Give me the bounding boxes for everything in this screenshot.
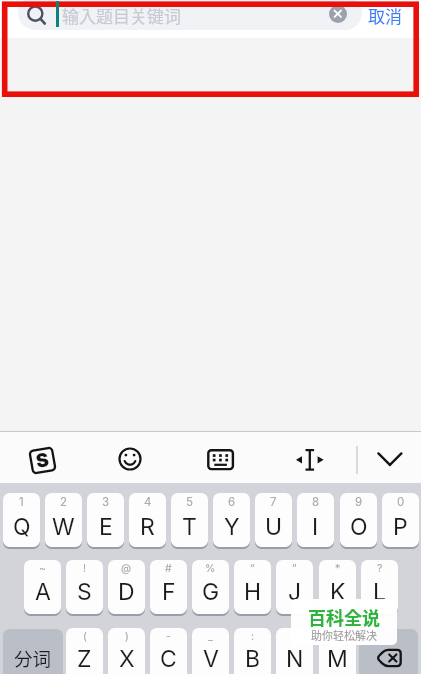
button[interactable]: @	[108, 560, 145, 614]
staticText: 分词	[14, 645, 52, 672]
button[interactable]: (	[66, 628, 103, 674]
button[interactable]: 5	[171, 493, 208, 547]
staticText: I	[312, 513, 319, 541]
button[interactable]: 2	[45, 493, 82, 547]
button[interactable]: -	[150, 628, 187, 674]
button[interactable]: “	[234, 560, 271, 614]
staticText: )	[125, 630, 129, 643]
staticText: #	[165, 562, 172, 575]
staticText: X	[119, 645, 135, 673]
button[interactable]: 8	[297, 493, 334, 547]
button[interactable]: 0	[382, 493, 419, 547]
staticText: E	[99, 513, 113, 541]
staticText: K	[330, 578, 346, 606]
button[interactable]	[117, 446, 143, 472]
button[interactable]: 7	[255, 493, 292, 547]
button[interactable]: :	[234, 628, 271, 674]
staticText: 7	[270, 495, 277, 509]
staticText: 9	[355, 495, 363, 509]
button[interactable]: 9	[340, 493, 377, 547]
staticText: 4	[144, 495, 152, 509]
button[interactable]	[207, 449, 235, 471]
staticText: G	[202, 578, 220, 606]
staticText: (	[83, 630, 87, 643]
staticText: P	[393, 513, 408, 541]
button[interactable]: 取消	[364, 0, 410, 30]
staticText: Q	[13, 513, 31, 541]
staticText: 。	[332, 630, 343, 643]
staticText: V	[203, 645, 219, 673]
button[interactable]	[359, 629, 418, 674]
staticText: L	[373, 578, 387, 606]
button[interactable]: *	[319, 560, 356, 614]
staticText: F	[162, 578, 176, 606]
staticText: *	[335, 562, 341, 575]
staticText: R	[140, 513, 155, 541]
staticText: Z	[77, 645, 92, 673]
staticText: 8	[312, 495, 320, 509]
button[interactable]: %	[192, 560, 229, 614]
button[interactable]: 3	[87, 493, 124, 547]
button[interactable]: S	[28, 446, 57, 475]
staticText: J	[288, 578, 302, 606]
staticText: 3	[102, 495, 110, 509]
staticText: ”	[292, 562, 297, 575]
staticText: H	[244, 578, 262, 606]
button[interactable]: ”	[276, 560, 313, 614]
staticText: 百科全说	[308, 604, 380, 630]
staticText: 6	[228, 495, 236, 509]
staticText: Y	[224, 513, 240, 541]
staticText: S	[77, 578, 92, 606]
staticText: W	[52, 513, 75, 541]
staticText: ?	[377, 562, 383, 575]
button[interactable]: )	[108, 628, 145, 674]
staticText: :	[251, 630, 255, 643]
button[interactable]: 4	[129, 493, 166, 547]
button[interactable]: !	[66, 560, 103, 614]
staticText: N	[286, 645, 304, 673]
button[interactable]: 分词	[3, 629, 63, 674]
staticText: -	[166, 630, 171, 643]
staticText: U	[265, 513, 283, 541]
staticText: _	[208, 630, 213, 643]
staticText: M	[327, 645, 348, 673]
staticText: 0	[397, 495, 405, 509]
button[interactable]: #	[150, 560, 187, 614]
staticText: ~	[39, 562, 46, 575]
staticText: @	[121, 562, 132, 575]
staticText: “	[250, 562, 255, 575]
staticText: !	[83, 562, 87, 575]
staticText: D	[118, 578, 135, 606]
staticText: 取消	[368, 3, 402, 28]
staticText: 助你轻松解决	[311, 627, 377, 643]
button[interactable]	[374, 449, 405, 469]
staticText: 2	[60, 495, 68, 509]
button[interactable]: ?	[361, 560, 398, 614]
staticText: %	[205, 562, 216, 575]
staticText: B	[245, 645, 261, 673]
staticText: T	[182, 513, 197, 541]
button[interactable]: 1	[3, 493, 40, 547]
button[interactable]	[18, 0, 362, 30]
button[interactable]: 。	[319, 628, 356, 674]
staticText: A	[35, 578, 51, 606]
staticText: 输入题目关键词	[62, 3, 181, 28]
button[interactable]	[329, 5, 347, 23]
button[interactable]: ~	[24, 560, 61, 614]
staticText: S	[34, 448, 51, 473]
button[interactable]: ;	[276, 628, 313, 674]
button[interactable]: _	[192, 628, 229, 674]
staticText: C	[160, 645, 177, 673]
staticText: 5	[186, 495, 193, 509]
button[interactable]: 6	[213, 493, 250, 547]
staticText: O	[350, 513, 368, 541]
staticText: 1	[19, 495, 24, 509]
